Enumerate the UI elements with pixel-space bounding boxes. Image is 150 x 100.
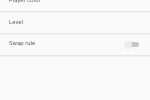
staticText: Player color	[9, 0, 41, 3]
button[interactable]: Swap rule	[0, 35, 150, 55]
staticText: Swap rule	[9, 39, 124, 46]
button[interactable]: Player color	[0, 0, 150, 11]
staticText: Level	[9, 18, 150, 25]
button[interactable]: Level	[0, 13, 150, 33]
button[interactable]: Swap rule switch, off	[124, 40, 139, 49]
